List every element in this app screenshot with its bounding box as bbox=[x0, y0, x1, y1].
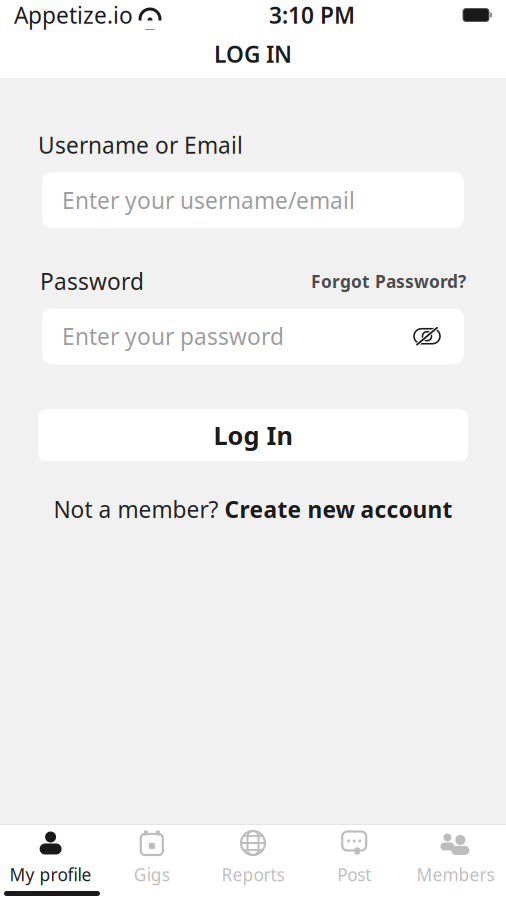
staticText: Forgot Password? bbox=[311, 270, 466, 293]
staticText: Members bbox=[416, 863, 494, 886]
button[interactable]: Show password bbox=[410, 319, 444, 353]
button[interactable]: My profile bbox=[0, 825, 101, 891]
staticText: Log In bbox=[213, 418, 292, 452]
staticText: My profile bbox=[10, 863, 92, 886]
staticText: LOG IN bbox=[214, 39, 292, 69]
button[interactable]: Post bbox=[304, 825, 405, 891]
staticText: Reports bbox=[221, 863, 284, 886]
staticText: Post bbox=[337, 863, 371, 886]
button[interactable]: Forgot Password? bbox=[311, 270, 466, 293]
button[interactable]: Log In bbox=[38, 409, 468, 461]
staticText: Not a member? bbox=[53, 494, 224, 524]
staticText: Password bbox=[40, 266, 144, 296]
staticText: Gigs bbox=[134, 863, 170, 886]
button[interactable]: Not a member? bbox=[0, 488, 506, 530]
button[interactable]: Gigs bbox=[101, 825, 202, 891]
staticText: Appetize.io bbox=[14, 0, 133, 30]
button[interactable]: Members bbox=[405, 825, 506, 891]
staticText: Enter your username/email bbox=[62, 185, 355, 215]
staticText: 3:10 PM bbox=[269, 0, 355, 30]
button[interactable]: Reports bbox=[202, 825, 304, 891]
staticText: Create new account bbox=[224, 494, 452, 524]
staticText: Enter your password bbox=[62, 321, 284, 351]
staticText: Username or Email bbox=[38, 130, 243, 160]
